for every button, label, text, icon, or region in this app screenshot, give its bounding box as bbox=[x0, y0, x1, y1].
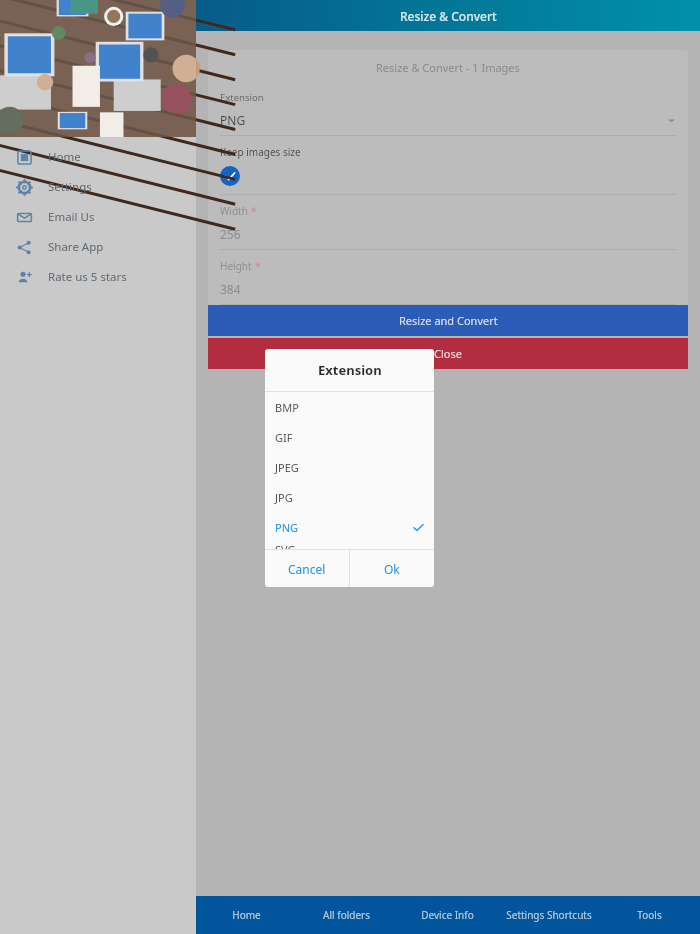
button[interactable]: Device Info bbox=[397, 896, 498, 934]
staticText: Close bbox=[434, 346, 462, 361]
staticText: Resize & Convert - 1 Images bbox=[376, 60, 520, 75]
button[interactable]: PNG bbox=[265, 512, 434, 542]
staticText: JPG bbox=[275, 490, 424, 505]
button[interactable]: Share App bbox=[0, 232, 196, 262]
button[interactable]: Home bbox=[0, 142, 196, 172]
button[interactable]: Cancel bbox=[265, 550, 349, 587]
button[interactable]: Settings bbox=[0, 172, 196, 202]
button[interactable]: JPEG bbox=[265, 452, 434, 482]
button[interactable]: BMP bbox=[265, 392, 434, 422]
staticText: Settings bbox=[48, 179, 92, 195]
button[interactable]: Close bbox=[208, 338, 688, 369]
staticText: JPEG bbox=[275, 460, 424, 475]
staticText: Home bbox=[232, 908, 261, 922]
staticText: Ok bbox=[384, 561, 400, 577]
staticText: Tools bbox=[637, 908, 662, 922]
staticText: PNG bbox=[275, 520, 413, 535]
button[interactable]: Keep images size bbox=[208, 136, 688, 195]
button[interactable]: Settings Shortcuts bbox=[498, 896, 599, 934]
staticText: PNG bbox=[220, 112, 667, 128]
button[interactable]: Ok bbox=[350, 550, 434, 587]
staticText: Settings Shortcuts bbox=[506, 908, 592, 922]
staticText: Cancel bbox=[288, 561, 326, 577]
staticText: Extension bbox=[318, 361, 382, 379]
staticText: Keep images size bbox=[220, 145, 301, 159]
button[interactable]: Home bbox=[196, 896, 296, 934]
staticText: Rate us 5 stars bbox=[48, 269, 127, 285]
button[interactable]: Height bbox=[208, 250, 688, 305]
staticText: Device Info bbox=[421, 908, 474, 922]
staticText: Email Us bbox=[48, 209, 95, 225]
button[interactable]: Width bbox=[208, 195, 688, 250]
button[interactable]: SVG bbox=[265, 542, 434, 549]
staticText: All folders bbox=[323, 908, 370, 922]
button[interactable]: GIF bbox=[265, 422, 434, 452]
staticText: GIF bbox=[275, 430, 424, 445]
staticText: Resize & Convert bbox=[400, 8, 497, 24]
staticText: Extension bbox=[220, 91, 264, 104]
staticText: * bbox=[255, 259, 261, 273]
button[interactable]: All folders bbox=[296, 896, 397, 934]
staticText: Height bbox=[220, 259, 252, 273]
button[interactable]: Tools bbox=[599, 896, 700, 934]
staticText: Share App bbox=[48, 239, 104, 255]
staticText: Width bbox=[220, 204, 248, 218]
button[interactable]: JPG bbox=[265, 482, 434, 512]
staticText: 256 bbox=[220, 226, 241, 242]
staticText: 384 bbox=[220, 281, 241, 297]
button[interactable]: Rate us 5 stars bbox=[0, 262, 196, 292]
staticText: Resize and Convert bbox=[399, 313, 498, 328]
button[interactable]: Email Us bbox=[0, 202, 196, 232]
staticText: Home bbox=[48, 149, 81, 165]
other: Keep images size bbox=[220, 166, 240, 186]
button[interactable]: Extension bbox=[208, 84, 688, 136]
staticText: SVG bbox=[275, 542, 424, 549]
staticText: BMP bbox=[275, 400, 424, 415]
button[interactable]: Resize and Convert bbox=[208, 305, 688, 336]
staticText: * bbox=[251, 204, 257, 218]
